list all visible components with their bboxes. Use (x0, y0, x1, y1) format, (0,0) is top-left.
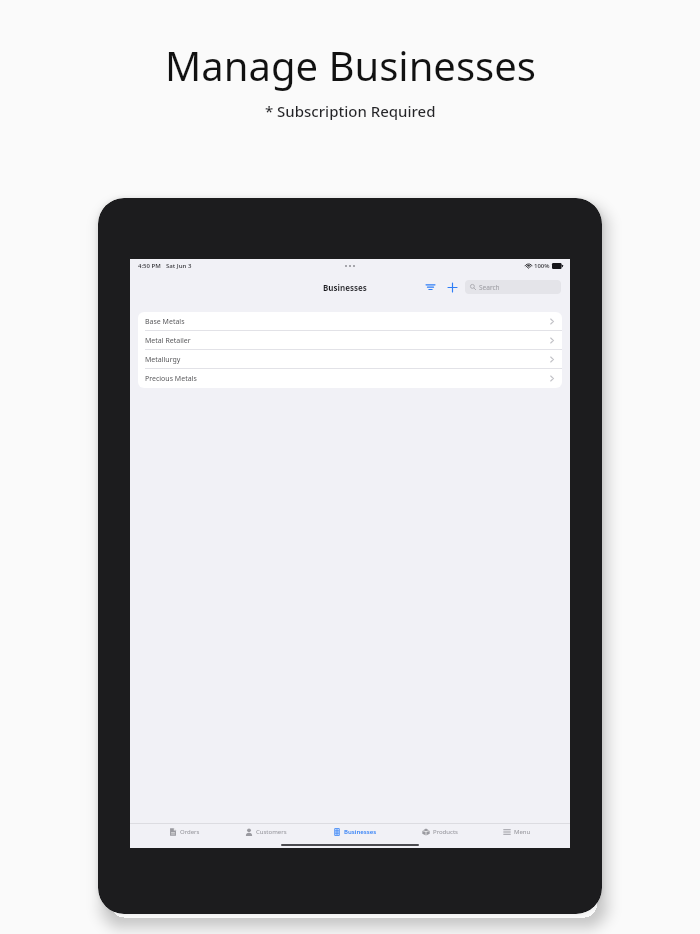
staticText: 100% (534, 262, 550, 270)
button[interactable]: Search (465, 280, 561, 294)
staticText: Search (479, 283, 500, 292)
staticText: 4:50 PM (138, 262, 161, 270)
button[interactable]: Metallurgy (138, 350, 562, 369)
staticText: Products (433, 828, 458, 836)
staticText: Metal Retailer (145, 336, 191, 346)
button[interactable]: Base Metals (138, 312, 562, 331)
staticText: Base Metals (145, 317, 185, 327)
button[interactable]: Menu (497, 826, 537, 838)
staticText: Manage Businesses (165, 38, 536, 92)
staticText: Precious Metals (145, 374, 197, 384)
staticText: Customers (256, 828, 287, 836)
staticText: Businesses (344, 828, 377, 836)
staticText: Metallurgy (145, 355, 181, 365)
staticText: Sat Jun 3 (166, 262, 192, 270)
button[interactable]: Precious Metals (138, 369, 562, 388)
button[interactable]: Products (416, 826, 464, 838)
staticText: Orders (180, 828, 200, 836)
button[interactable]: Customers (239, 826, 293, 838)
button[interactable]: Filter (422, 279, 438, 295)
staticText: * Subscription Required (265, 101, 436, 121)
button[interactable]: Metal Retailer (138, 331, 562, 350)
button[interactable]: Businesses (327, 826, 383, 838)
staticText: Menu (514, 828, 531, 836)
staticText: Businesses (323, 282, 367, 293)
button[interactable]: Orders (163, 826, 206, 838)
button[interactable]: Add business (444, 279, 460, 295)
